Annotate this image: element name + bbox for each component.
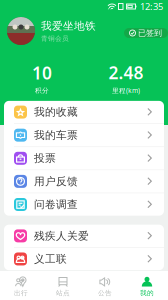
button[interactable]: 我的收藏 <box>4 101 164 123</box>
staticText: 已签到 <box>138 28 162 38</box>
staticText: 我的车票 <box>34 129 78 142</box>
button[interactable]: 用户反馈 <box>4 170 164 193</box>
staticText: 残疾人关爱 <box>34 229 89 242</box>
staticText: 积分 <box>35 86 49 94</box>
button[interactable]: 公告 <box>84 271 126 300</box>
staticText: 里程(km) <box>112 86 140 95</box>
staticText: 问卷调查 <box>34 198 78 211</box>
button[interactable]: 义工联 <box>4 248 164 270</box>
button[interactable]: 我的车票 <box>4 124 164 146</box>
button[interactable]: 问卷调查 <box>4 193 164 216</box>
button[interactable]: 投票 <box>4 147 164 169</box>
button[interactable]: 站点 <box>42 271 84 300</box>
staticText: 我的 <box>140 289 154 297</box>
staticText: 公告 <box>98 289 112 297</box>
staticText: 我的收藏 <box>34 105 78 119</box>
button[interactable]: 已签到 <box>124 24 168 38</box>
button[interactable]: 出行 <box>0 271 42 300</box>
button[interactable]: 残疾人关爱 <box>4 225 164 247</box>
staticText: 义工联 <box>34 252 67 265</box>
staticText: 投票 <box>34 152 56 165</box>
staticText: 12:35 <box>140 0 163 13</box>
staticText: 出行 <box>14 289 28 297</box>
staticText: 2.48 <box>108 61 143 84</box>
staticText: 用户反馈 <box>34 175 78 188</box>
staticText: 我爱坐地铁 <box>41 19 96 32</box>
staticText: 10 <box>32 61 52 84</box>
staticText: 站点 <box>56 289 70 297</box>
staticText: 青铜会员 <box>41 34 69 43</box>
button[interactable]: 我的 <box>126 271 168 300</box>
